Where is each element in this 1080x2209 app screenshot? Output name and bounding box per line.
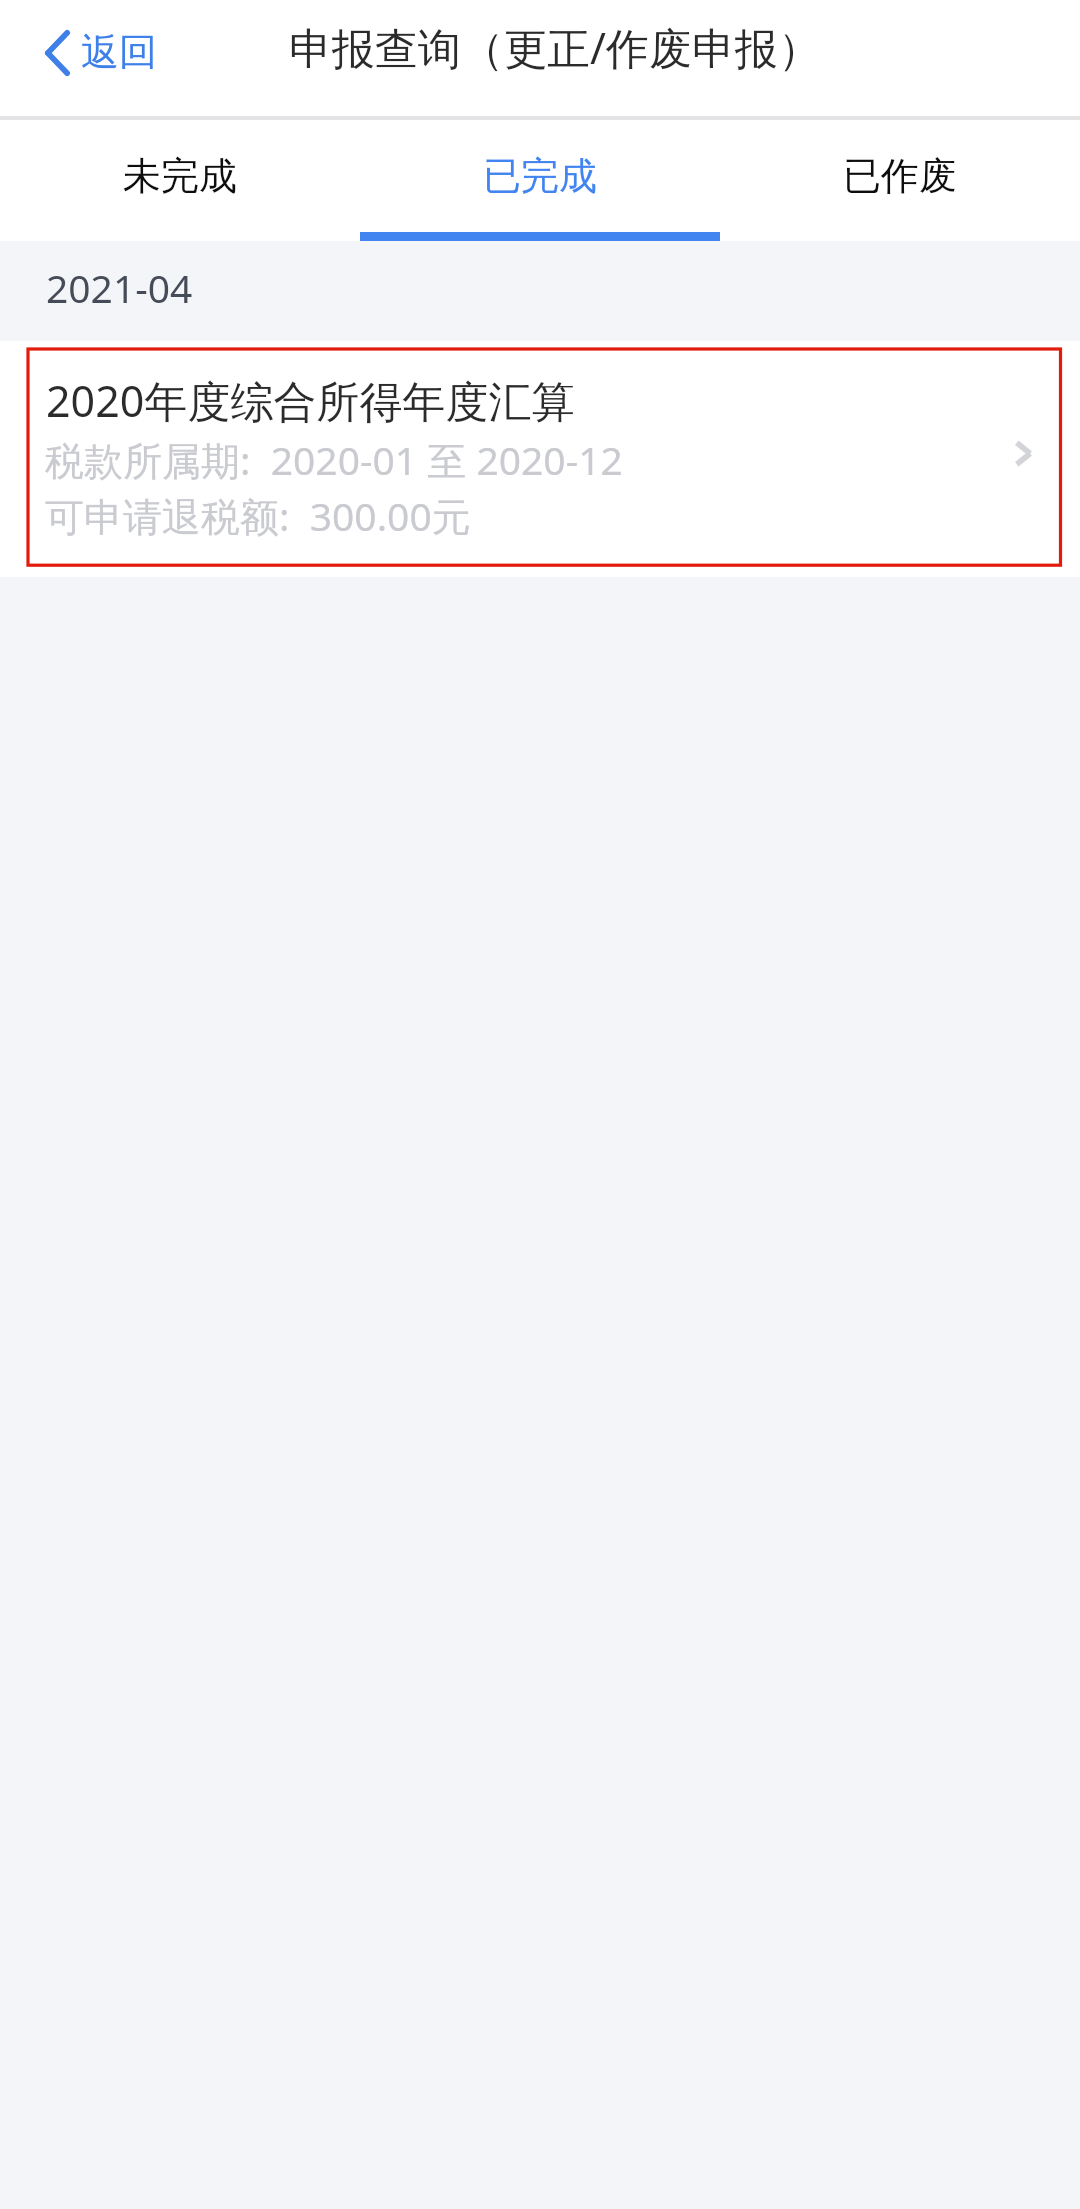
- button[interactable]: 2020年度综合所得年度汇算: [0, 341, 1080, 577]
- staticText: 2021-04: [46, 261, 193, 314]
- staticText: 已完成: [483, 152, 597, 200]
- staticText: 2020年度综合所得年度汇算: [46, 371, 575, 430]
- staticText: 已作废: [843, 152, 957, 200]
- button[interactable]: 已作废: [720, 120, 1080, 241]
- button[interactable]: 已完成: [360, 120, 720, 241]
- staticText: 申报查询（更正/作废申报）: [289, 18, 821, 77]
- staticText: 返回: [81, 28, 157, 76]
- other: 查看详情: [1014, 440, 1033, 467]
- button[interactable]: 返回 Back: [20, 0, 175, 117]
- button[interactable]: 未完成: [0, 120, 360, 241]
- staticText: 可申请退税额: 300.00元: [45, 489, 471, 542]
- staticText: 未完成: [123, 152, 237, 200]
- staticText: 税款所属期: 2020-01 至 2020-12: [45, 433, 623, 486]
